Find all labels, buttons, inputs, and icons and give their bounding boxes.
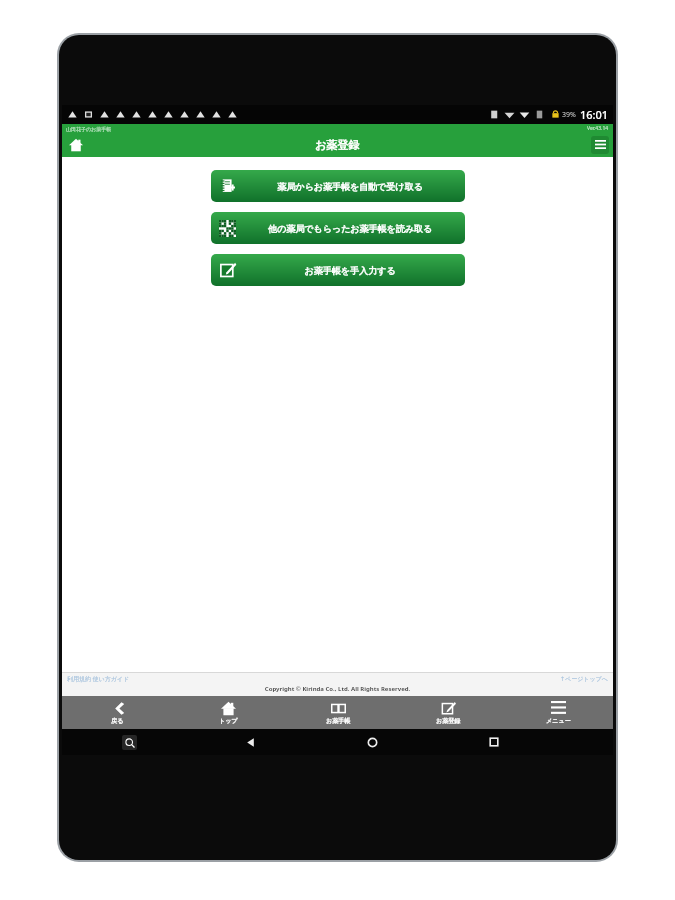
button[interactable]: ↑ページトップへ (560, 675, 608, 683)
staticText: 16:01 (580, 107, 609, 122)
staticText: 山田花子のお薬手帳 (66, 126, 112, 132)
button[interactable]: 戻る (241, 733, 259, 751)
staticText: お薬登録 (436, 717, 461, 725)
staticText: お薬登録 (315, 138, 360, 152)
staticText: お薬手帳 (326, 717, 351, 725)
staticText: メニュー (546, 717, 571, 725)
button[interactable]: 履歴 (485, 733, 503, 751)
button[interactable]: お薬手帳を手入力する (211, 254, 465, 286)
button[interactable]: メニュー (591, 136, 609, 154)
button[interactable]: トップ (173, 696, 283, 729)
button[interactable]: ズーム (122, 735, 137, 750)
staticText: Ver.43.14 (587, 125, 609, 132)
button[interactable]: ホーム (363, 733, 381, 751)
button[interactable]: お薬登録 (393, 696, 503, 729)
staticText: 他の薬局でもらったお薬手帳を読み取る (240, 223, 460, 234)
staticText: 戻る (111, 717, 124, 725)
button[interactable]: 薬局からお薬手帳を自動で受け取る (211, 170, 465, 202)
button[interactable]: 他の薬局でもらったお薬手帳を読み取る (211, 212, 465, 244)
staticText: お薬手帳を手入力する (240, 265, 460, 276)
button[interactable]: 戻る (62, 696, 173, 729)
button[interactable]: 利用規約 使い方ガイド (67, 675, 130, 683)
staticText: トップ (219, 717, 238, 725)
button[interactable]: ホーム (66, 135, 86, 155)
button[interactable]: メニュー (503, 696, 613, 729)
button[interactable]: お薬手帳 (283, 696, 393, 729)
staticText: Copyright © Kirinda Co., Ltd. All Rights… (62, 685, 613, 693)
staticText: 薬局からお薬手帳を自動で受け取る (240, 181, 460, 192)
staticText: 39% (562, 110, 576, 120)
